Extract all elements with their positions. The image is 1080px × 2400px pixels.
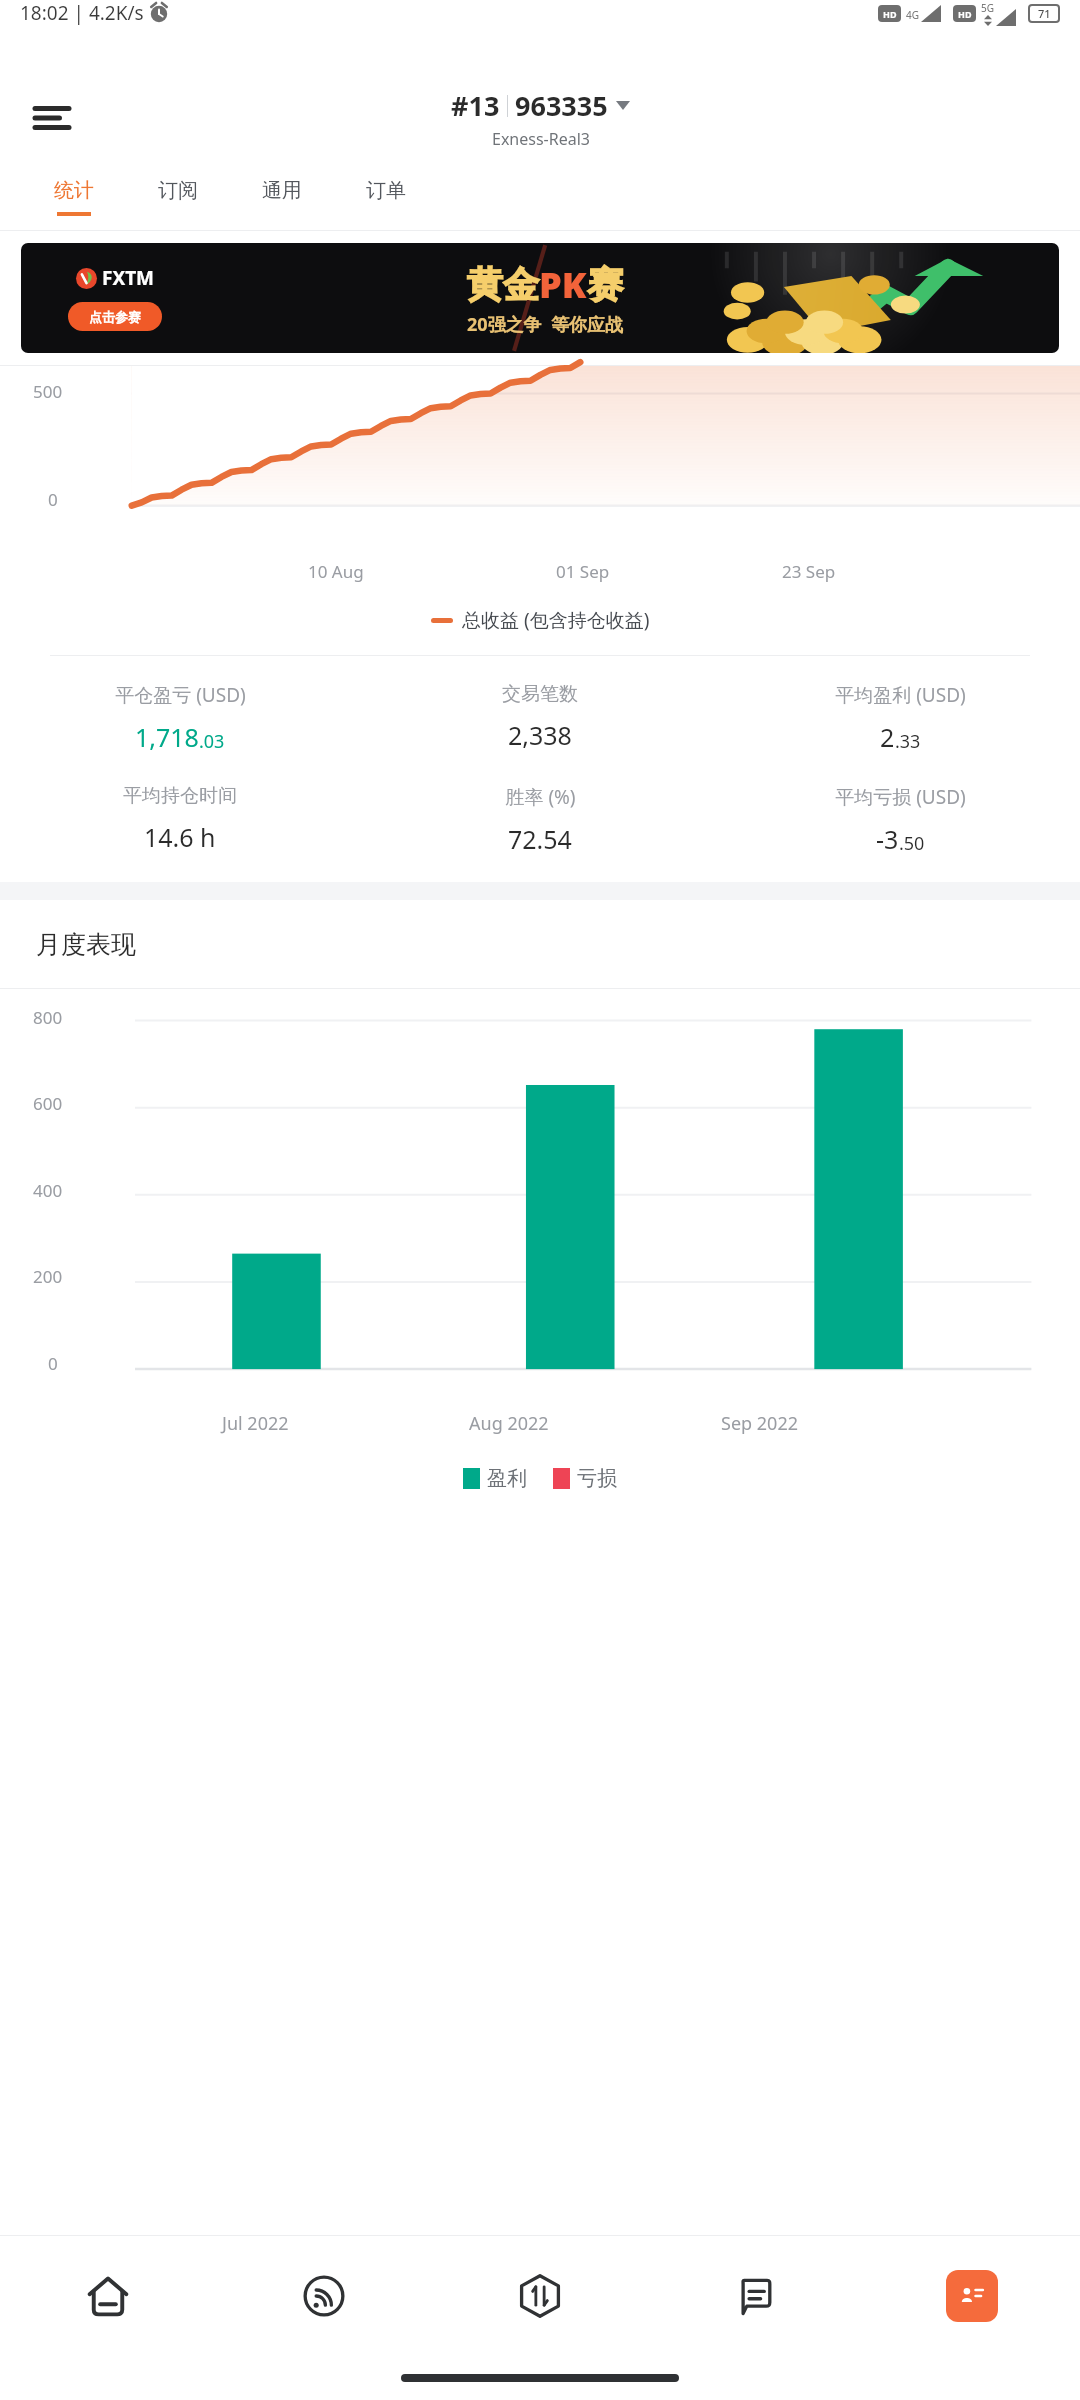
button[interactable]: #13 bbox=[451, 87, 630, 150]
staticText: #13 bbox=[451, 87, 500, 124]
staticText: 点击参赛 bbox=[89, 309, 141, 325]
button[interactable]: Trade bbox=[432, 2236, 648, 2356]
staticText: 23 Sep bbox=[782, 560, 836, 583]
staticText: 平均持仓时间 bbox=[123, 784, 237, 808]
staticText: .50 bbox=[899, 831, 925, 856]
staticText: 订单 bbox=[366, 178, 406, 203]
button[interactable]: 订单 bbox=[334, 164, 438, 230]
staticText: -3 bbox=[876, 822, 899, 856]
staticText: Exness-Real3 bbox=[492, 128, 590, 150]
staticText: 月度表现 bbox=[36, 929, 136, 960]
staticText: 963335 bbox=[515, 87, 608, 124]
staticText: Jul 2022 bbox=[222, 1411, 289, 1436]
staticText: 平均盈利 (USD) bbox=[835, 682, 966, 708]
staticText: 10 Aug bbox=[308, 560, 364, 583]
button[interactable]: Chat bbox=[648, 2236, 864, 2356]
staticText: 72.54 bbox=[508, 822, 572, 856]
staticText: 2 bbox=[880, 720, 895, 754]
staticText: 亏损 bbox=[577, 1466, 617, 1491]
button[interactable]: Menu bbox=[24, 90, 80, 146]
staticText: FXTM bbox=[102, 265, 155, 291]
staticText: 01 Sep bbox=[556, 560, 610, 583]
staticText: 800 bbox=[33, 1006, 63, 1029]
staticText: 通用 bbox=[262, 178, 302, 203]
staticText: 0 bbox=[48, 1352, 58, 1375]
staticText: 1,718 bbox=[135, 720, 199, 754]
button[interactable]: FXTM bbox=[21, 243, 1059, 353]
staticText: 14.6 h bbox=[144, 820, 216, 854]
staticText: 订阅 bbox=[158, 178, 198, 203]
staticText: 平仓盈亏 (USD) bbox=[115, 682, 246, 708]
button[interactable]: Signals bbox=[216, 2236, 432, 2356]
staticText: 500 bbox=[33, 380, 63, 403]
staticText: 黄金 bbox=[467, 262, 539, 307]
staticText: 71 bbox=[1038, 6, 1051, 21]
staticText: 20强之争 等你应战 bbox=[467, 312, 623, 337]
staticText: 600 bbox=[33, 1092, 63, 1115]
button[interactable]: 统计 bbox=[22, 164, 126, 230]
staticText: .03 bbox=[199, 729, 225, 754]
staticText: HD bbox=[883, 8, 897, 20]
staticText: Aug 2022 bbox=[469, 1411, 549, 1436]
staticText: 统计 bbox=[54, 178, 94, 203]
staticText: PK bbox=[539, 260, 587, 309]
button[interactable]: 通用 bbox=[230, 164, 334, 230]
button[interactable]: Home bbox=[0, 2236, 216, 2356]
staticText: 4G bbox=[906, 8, 919, 22]
button[interactable]: 订阅 bbox=[126, 164, 230, 230]
staticText: 交易笔数 bbox=[502, 682, 578, 706]
staticText: 200 bbox=[33, 1265, 63, 1288]
staticText: 2,338 bbox=[508, 718, 572, 752]
staticText: 18:02 | 4.2K/s bbox=[20, 0, 144, 26]
staticText: 0 bbox=[48, 488, 58, 511]
staticText: 5G bbox=[981, 1, 994, 15]
staticText: 赛 bbox=[587, 262, 623, 307]
staticText: 胜率 (%) bbox=[505, 784, 576, 810]
staticText: Sep 2022 bbox=[721, 1411, 798, 1436]
staticText: HD bbox=[958, 8, 972, 20]
staticText: 总收益 (包含持仓收益) bbox=[462, 607, 650, 633]
button[interactable]: Profile bbox=[946, 2270, 998, 2322]
staticText: 盈利 bbox=[487, 1466, 527, 1491]
staticText: .33 bbox=[895, 729, 921, 754]
staticText: 平均亏损 (USD) bbox=[835, 784, 966, 810]
staticText: 400 bbox=[33, 1179, 63, 1202]
